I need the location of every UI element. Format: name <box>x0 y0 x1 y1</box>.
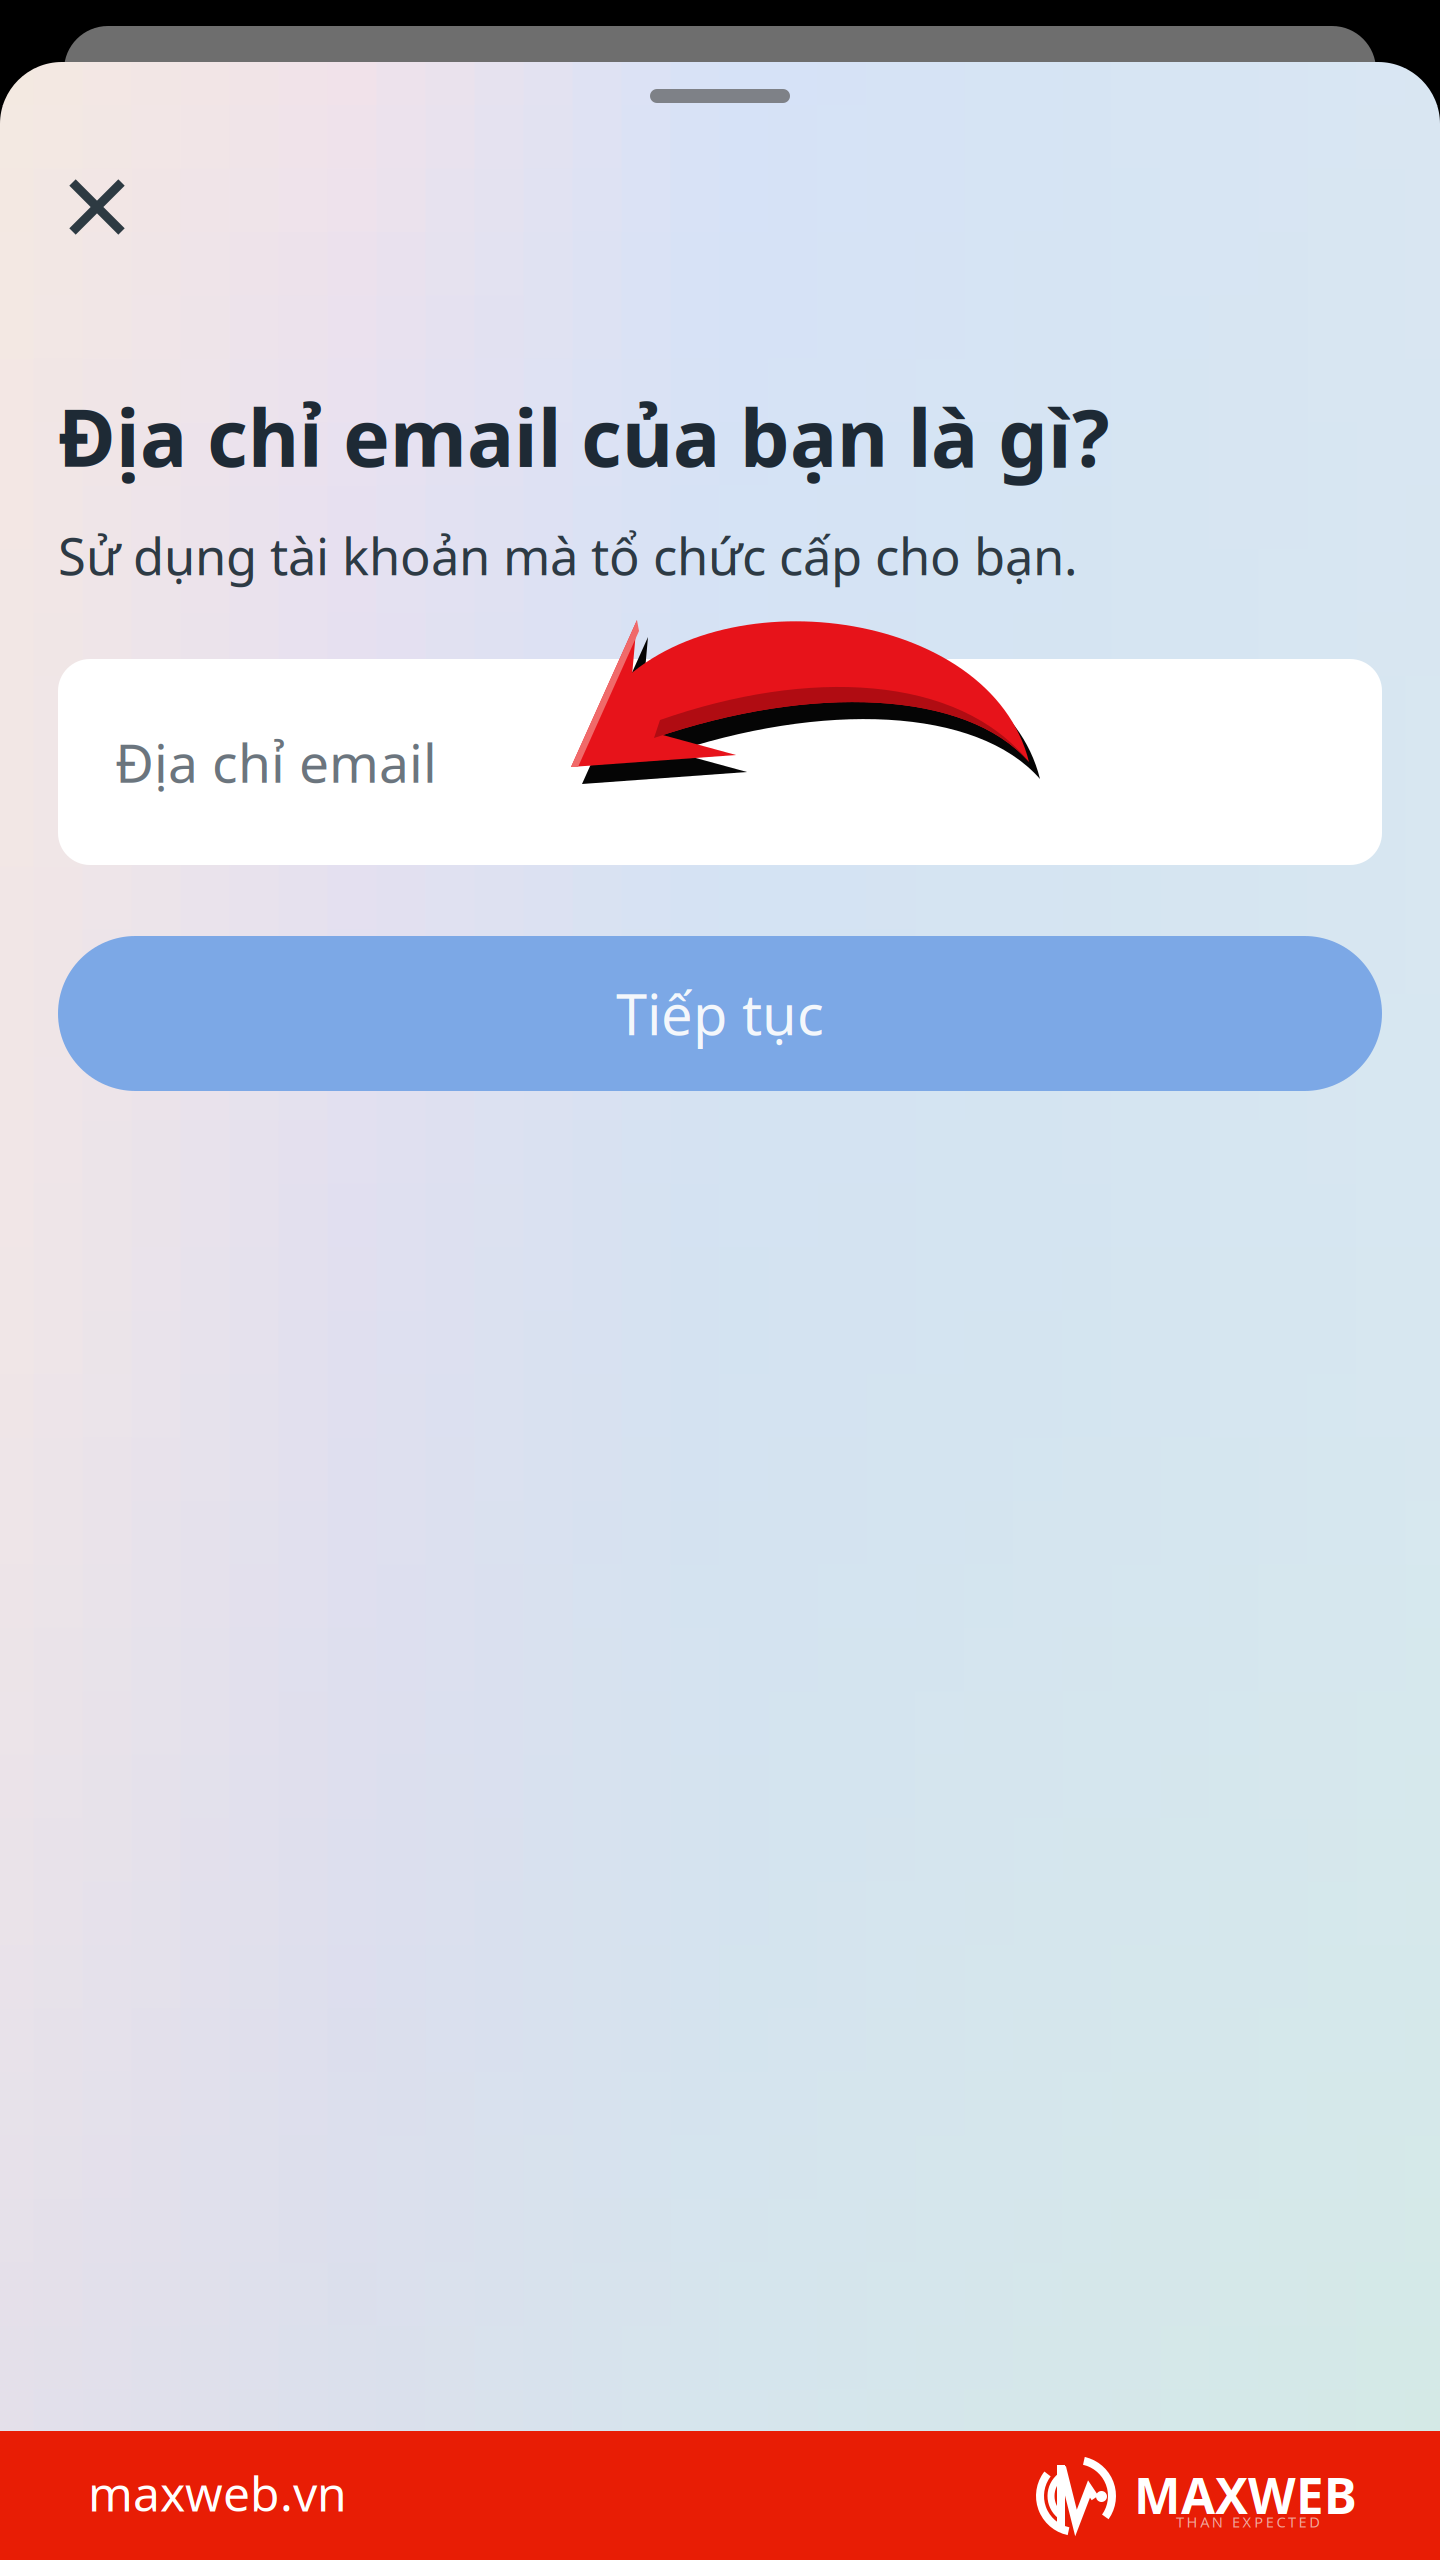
staticText: H <box>1187 2512 1198 2531</box>
staticText: T <box>1176 2512 1184 2531</box>
staticText: T <box>1288 2512 1296 2531</box>
staticText: C <box>1276 2512 1285 2531</box>
staticText: Sử dụng tài khoản mà tổ chức cấp cho bạn… <box>58 522 1078 589</box>
staticText: A <box>1200 2512 1209 2531</box>
button[interactable]: Close <box>42 152 152 262</box>
staticText: Địa chỉ email <box>115 727 437 797</box>
staticText: X <box>1243 2512 1252 2531</box>
staticText: MAXWEB <box>1134 2462 1357 2527</box>
staticText: maxweb.vn <box>88 2461 347 2525</box>
staticText: E <box>1266 2512 1274 2531</box>
staticText: D <box>1309 2512 1320 2531</box>
staticText: E <box>1232 2512 1240 2531</box>
staticText: E <box>1299 2512 1307 2531</box>
staticText: P <box>1254 2512 1263 2531</box>
staticText: Tiếp tục <box>616 976 824 1051</box>
button[interactable]: Tiếp tục <box>58 936 1382 1091</box>
staticText: N <box>1212 2512 1223 2531</box>
staticText: Địa chỉ email của bạn là gì? <box>58 384 1110 488</box>
